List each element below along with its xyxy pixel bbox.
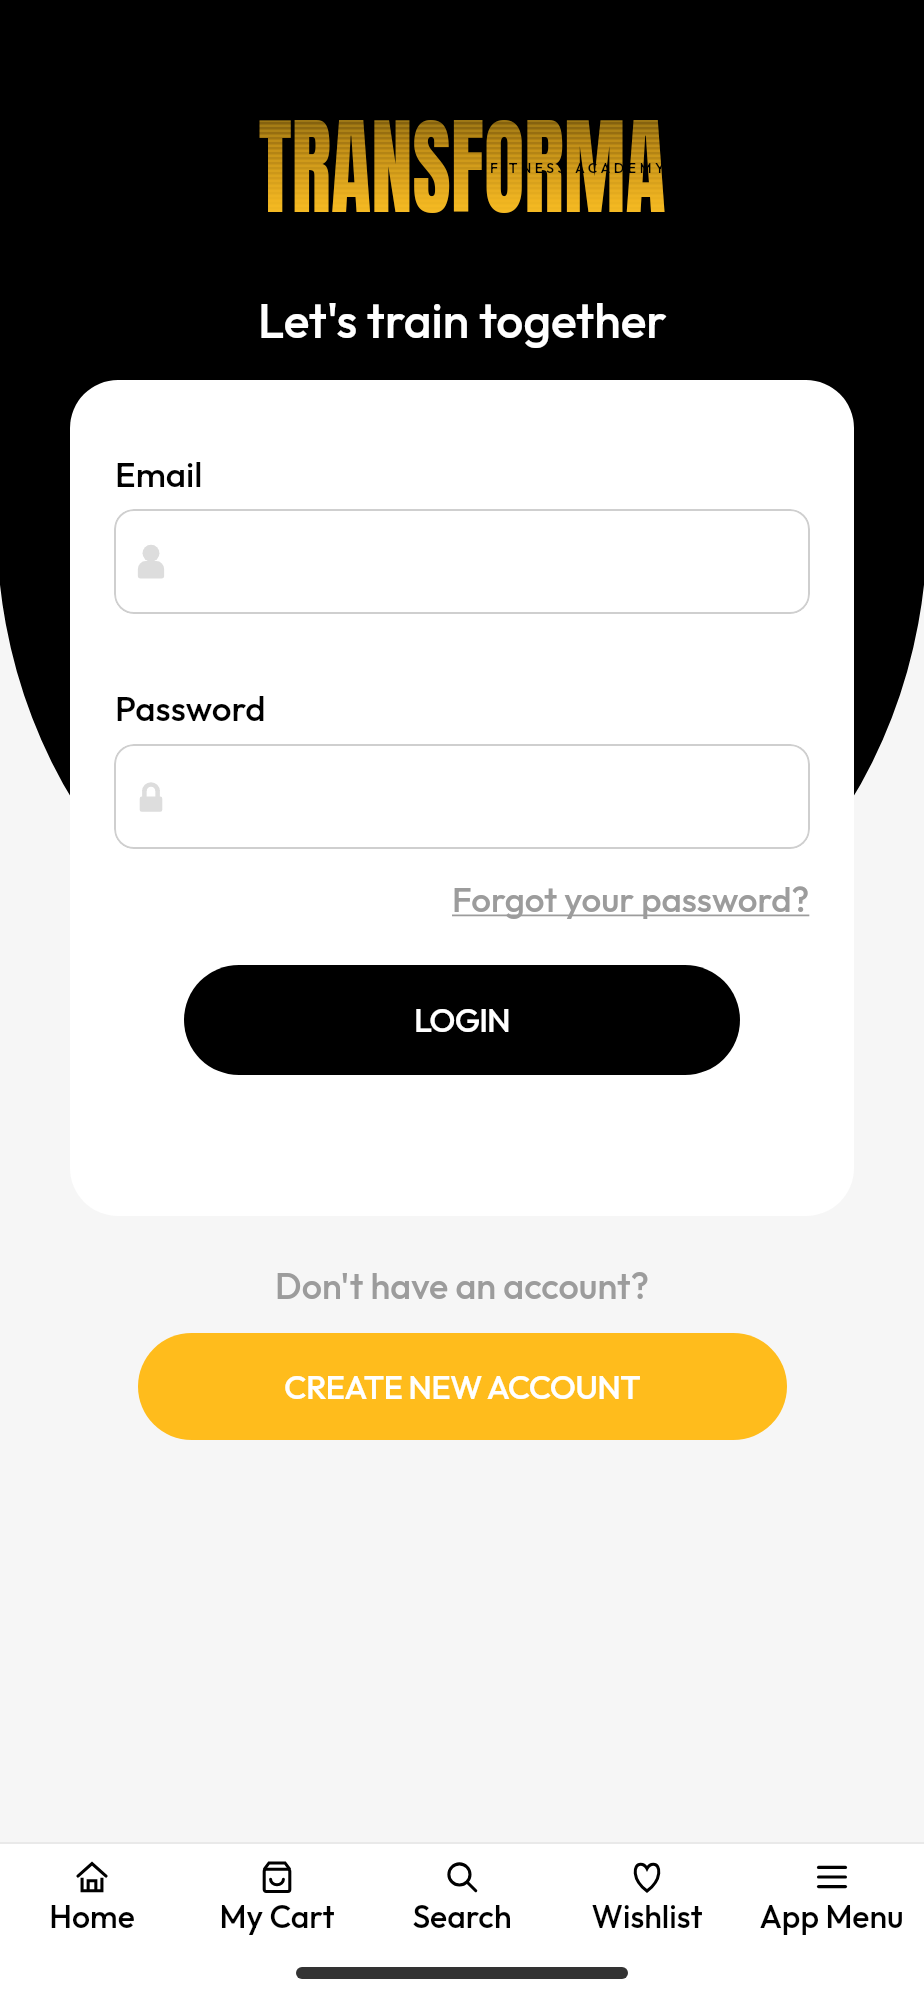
staticText: My Cart (219, 1896, 335, 1936)
button[interactable]: Email field (114, 509, 810, 614)
staticText: CREATE NEW ACCOUNT (284, 1366, 641, 1408)
button[interactable]: App Menu (739, 1844, 924, 1936)
other: App Menu (816, 1861, 848, 1893)
staticText: Password (115, 686, 266, 730)
staticText: LOGIN (414, 999, 510, 1041)
staticText: Wishlist (591, 1896, 703, 1936)
staticText: TRANSFORMA (259, 87, 666, 247)
button[interactable]: Password field (114, 744, 810, 849)
staticText: Home (49, 1896, 135, 1936)
button[interactable]: Forgot your password? (452, 877, 810, 921)
staticText: Don't have an account? (275, 1263, 649, 1308)
staticText: Let's train together (258, 290, 667, 350)
other: Search (446, 1861, 478, 1893)
staticText: Search (412, 1896, 512, 1936)
button[interactable]: LOGIN (184, 965, 740, 1075)
staticText: Forgot your password? (452, 877, 810, 921)
button[interactable]: CREATE NEW ACCOUNT (138, 1333, 787, 1440)
other: Wishlist (631, 1861, 663, 1893)
button[interactable]: Search (369, 1844, 554, 1936)
staticText: App Menu (759, 1896, 904, 1936)
other: My Cart (261, 1861, 293, 1893)
button[interactable]: My Cart (184, 1844, 369, 1936)
staticText: FITNESS ACADEMY (490, 159, 669, 177)
button[interactable]: Wishlist (554, 1844, 739, 1936)
button[interactable]: Home (0, 1844, 184, 1936)
staticText: Email (115, 452, 203, 496)
other: Home (76, 1861, 108, 1893)
